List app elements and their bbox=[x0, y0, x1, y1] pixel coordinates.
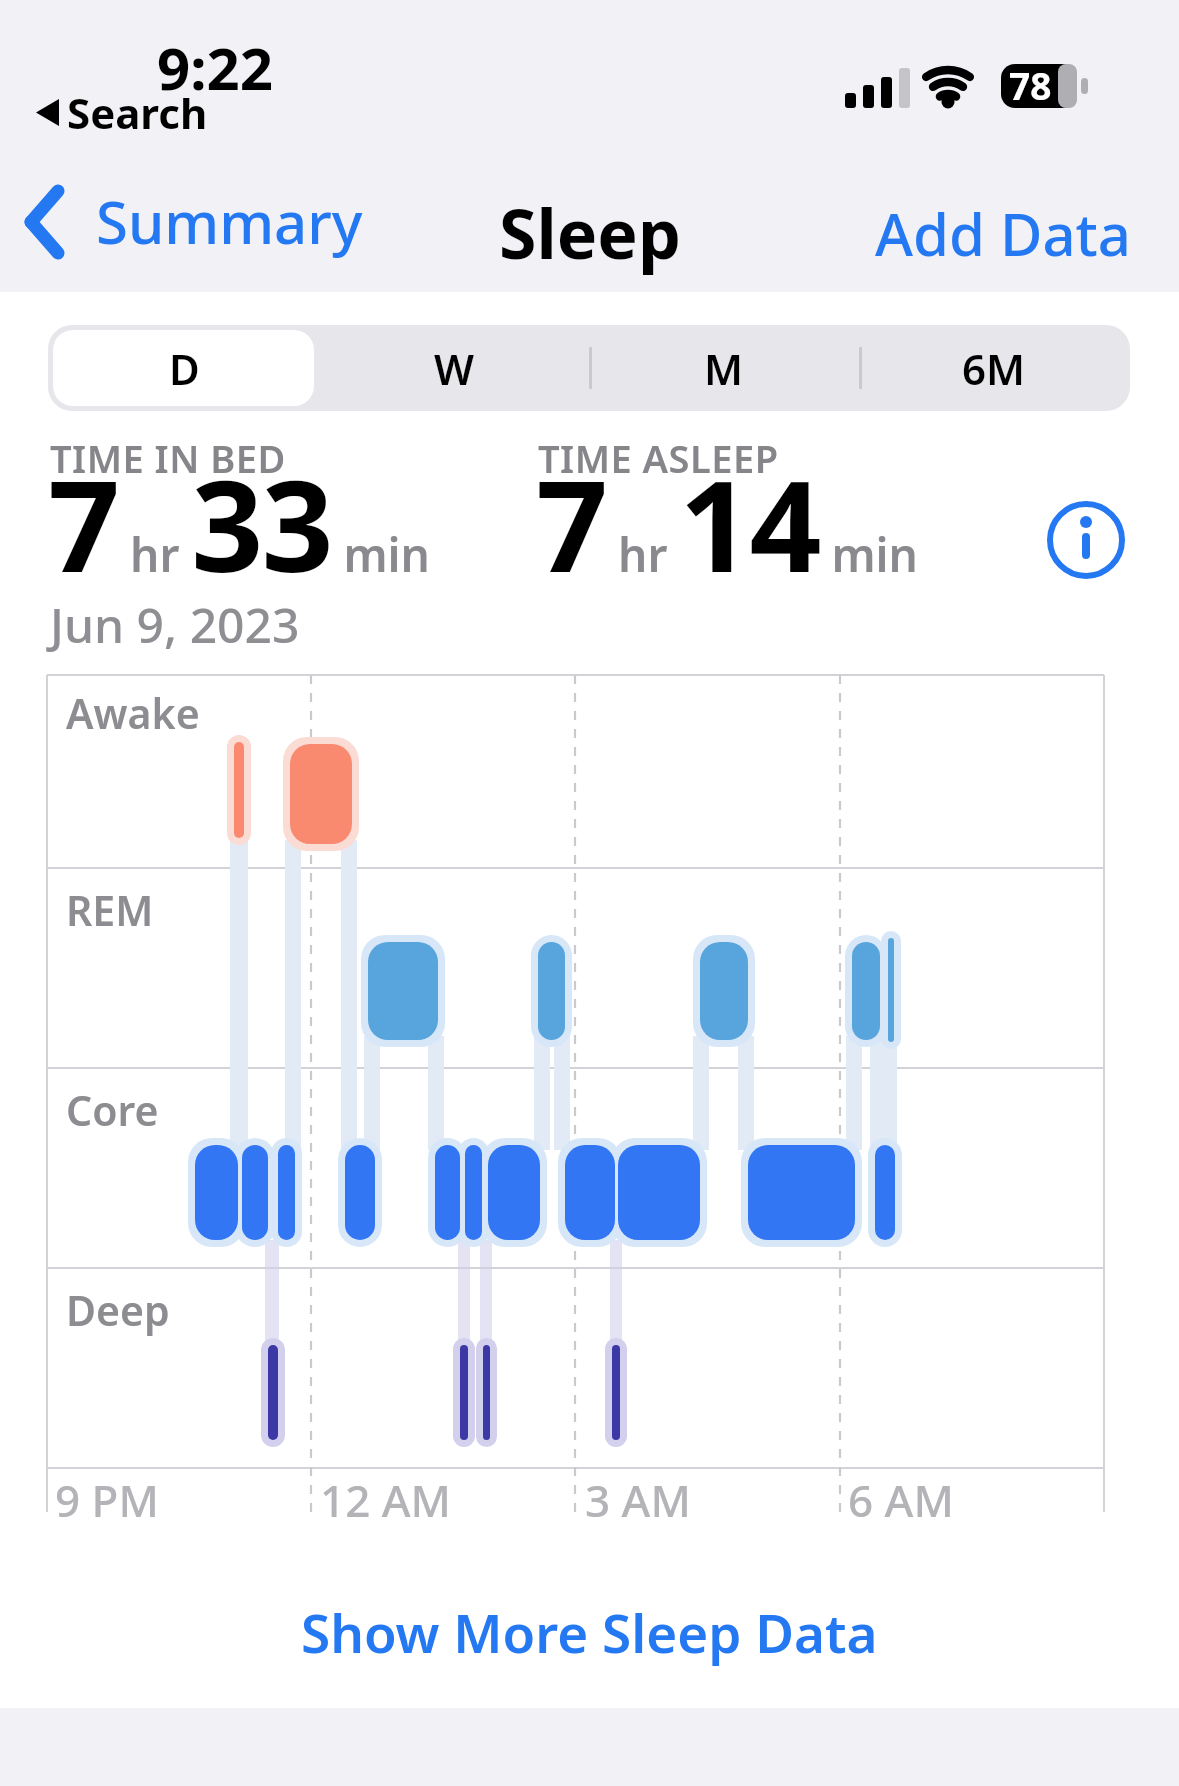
button[interactable]: D bbox=[49, 325, 319, 411]
staticText: 3 AM bbox=[585, 1470, 691, 1530]
staticText: 12 AM bbox=[320, 1470, 451, 1530]
staticText: W bbox=[434, 340, 475, 397]
staticText: Deep bbox=[66, 1282, 170, 1338]
staticText: Awake bbox=[66, 685, 200, 741]
staticText: TIME IN BED bbox=[50, 432, 286, 484]
staticText: TIME ASLEEP bbox=[538, 432, 779, 484]
staticText: 9:22 bbox=[157, 28, 273, 107]
staticText: 9 PM bbox=[55, 1470, 159, 1530]
staticText: Search bbox=[67, 84, 208, 141]
button[interactable]: 6M bbox=[859, 325, 1129, 411]
staticText: Jun 9, 2023 bbox=[50, 592, 300, 657]
staticText: Add Data bbox=[875, 194, 1131, 273]
button[interactable]: Summary bbox=[20, 182, 363, 261]
staticText: Show More Sleep Data bbox=[301, 1596, 878, 1668]
button[interactable]: M bbox=[589, 325, 859, 411]
staticText: 7 hr 14 min bbox=[536, 437, 918, 609]
button[interactable] bbox=[1048, 502, 1124, 578]
staticText: 78 bbox=[1009, 60, 1052, 110]
staticText: REM bbox=[66, 882, 154, 938]
staticText: Core bbox=[66, 1082, 159, 1138]
button[interactable]: W bbox=[319, 325, 589, 411]
button[interactable]: Add Data bbox=[875, 194, 1131, 273]
staticText: D bbox=[169, 340, 200, 397]
staticText: Summary bbox=[96, 182, 363, 261]
staticText: 6M bbox=[962, 340, 1026, 397]
staticText: Sleep bbox=[499, 186, 681, 279]
staticText: M bbox=[704, 340, 744, 397]
staticText: 7 hr 33 min bbox=[48, 437, 430, 609]
button[interactable]: Show More Sleep Data bbox=[281, 1590, 898, 1674]
staticText: 6 AM bbox=[848, 1470, 954, 1530]
button[interactable]: Search bbox=[36, 84, 208, 141]
